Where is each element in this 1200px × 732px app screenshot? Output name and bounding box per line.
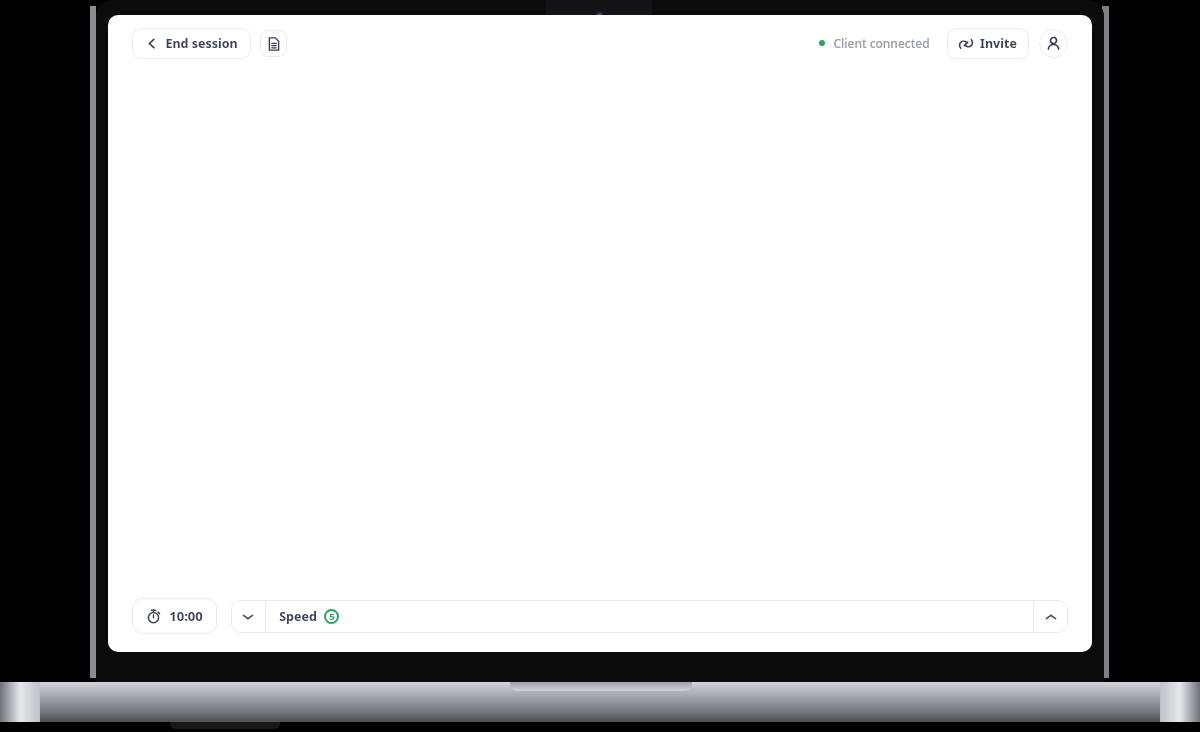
staticText: 5 <box>329 610 335 623</box>
staticText: Invite <box>980 35 1017 52</box>
button[interactable]: Invite <box>947 28 1029 59</box>
staticText: End session <box>165 35 238 52</box>
button[interactable]: End session <box>132 28 251 59</box>
button[interactable]: Decrease speed <box>231 600 265 633</box>
staticText: 10:00 <box>169 607 203 625</box>
button[interactable]: Account <box>1039 29 1068 58</box>
button[interactable]: Increase speed <box>1034 600 1068 633</box>
staticText: Client connected <box>833 35 930 51</box>
button[interactable]: Session notes <box>260 30 287 57</box>
button[interactable]: Speed <box>266 600 1033 633</box>
staticText: Speed <box>279 608 317 625</box>
button[interactable]: 10:00 <box>132 598 217 634</box>
